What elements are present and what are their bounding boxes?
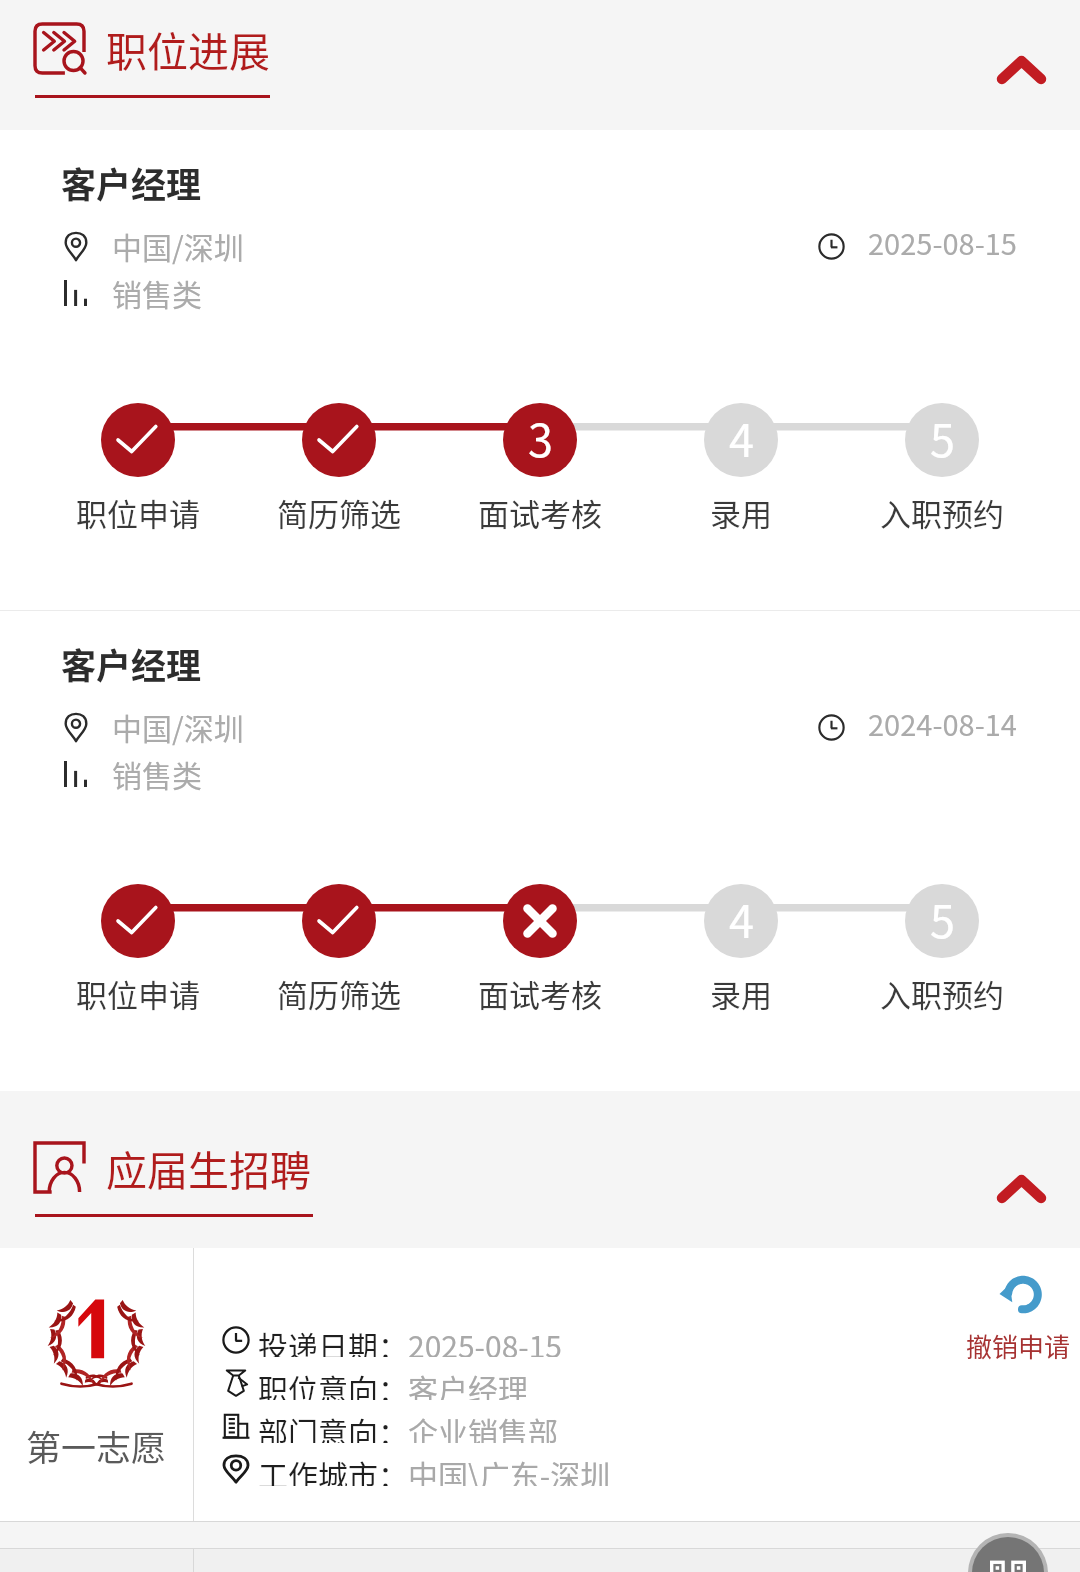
button[interactable]: Collapse section [951,21,1080,119]
button[interactable]: 撤销申请 [945,1277,1080,1365]
staticText: 第一志愿 [26,1420,167,1464]
staticText: 职位进展 [106,19,270,78]
staticText: 职位意向： [258,1366,408,1400]
staticText: 部门意向： [258,1409,408,1443]
staticText: 应届生招聘 [106,1138,311,1197]
button[interactable]: Collapse section [951,1140,1080,1238]
button[interactable]: Scan QR code [968,1533,1048,1572]
staticText: 5 [930,886,955,951]
staticText: 简历筛选 [277,490,401,534]
staticText: 中国\广东-深圳 [408,1452,611,1486]
staticText: 销售类 [112,752,202,795]
staticText: 中国/深圳 [112,705,244,748]
staticText: 面试考核 [478,971,602,1015]
staticText: 入职预约 [880,971,1004,1015]
staticText: 企业销售部 [408,1409,558,1443]
button[interactable]: 第一志愿 [0,1248,1080,1521]
staticText: 录用 [710,971,772,1015]
button[interactable]: 职位进展 [35,2,270,98]
staticText: 4 [729,405,754,470]
staticText: 投递日期： [258,1323,408,1357]
staticText: 录用 [710,490,772,534]
staticText: 2024-08-14 [868,702,1017,744]
staticText: 职位申请 [76,971,200,1015]
staticText: 2025-08-15 [868,221,1017,263]
staticText: 工作城市： [258,1452,408,1486]
staticText: 客户经理 [61,638,202,689]
staticText: 中国/深圳 [112,224,244,267]
staticText: 简历筛选 [277,971,401,1015]
staticText: 销售类 [112,271,202,314]
staticText: 客户经理 [408,1366,528,1400]
staticText: 5 [930,405,955,470]
button[interactable]: 客户经理 [0,130,1080,610]
button[interactable]: 应届生招聘 [35,1121,313,1217]
staticText: 职位申请 [76,490,200,534]
staticText: 面试考核 [478,490,602,534]
staticText: 4 [729,886,754,951]
staticText: 2025-08-15 [408,1323,563,1357]
button[interactable]: 客户经理 [0,611,1080,1091]
staticText: 客户经理 [61,157,202,208]
staticText: 入职预约 [880,490,1004,534]
staticText: 撤销申请 [966,1327,1071,1365]
staticText: 3 [528,405,553,470]
